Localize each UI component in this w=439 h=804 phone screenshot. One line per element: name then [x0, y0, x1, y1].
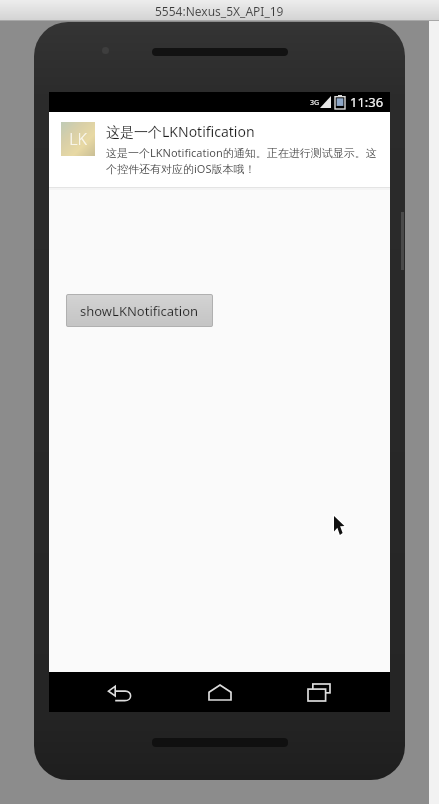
button[interactable]: showLKNotification — [66, 294, 213, 327]
button[interactable]: Recent apps — [290, 672, 348, 712]
staticText: showLKNotification — [80, 302, 199, 320]
staticText: 这是一个LKNotification的通知。正在进行测试显示。这个控件还有对应的… — [106, 145, 378, 176]
staticText: LK — [69, 128, 87, 150]
staticText: 3G — [310, 98, 320, 108]
staticText: 5554:Nexus_5X_API_19 — [155, 3, 284, 19]
button[interactable]: LK — [49, 112, 390, 190]
button[interactable]: Back — [91, 672, 149, 712]
staticText: 这是一个LKNotification — [106, 122, 255, 141]
button[interactable]: Home — [191, 672, 249, 712]
staticText: 11:36 — [350, 93, 384, 111]
